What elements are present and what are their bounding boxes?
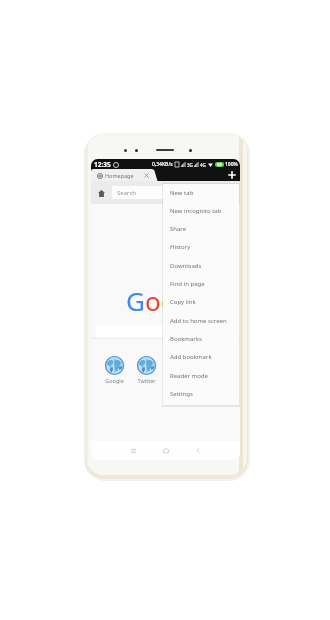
- button[interactable]: Twitter: [131, 356, 161, 384]
- button[interactable]: New incognito tab: [163, 202, 239, 220]
- staticText: Downloads: [170, 262, 202, 270]
- staticText: Twitter: [137, 377, 156, 384]
- staticText: Find in page: [170, 280, 205, 288]
- staticText: l: [193, 283, 200, 318]
- staticText: 0,34KB/s: [152, 161, 173, 168]
- staticText: e: [200, 283, 215, 318]
- staticText: o: [161, 283, 177, 318]
- button[interactable]: Find in page: [163, 275, 239, 293]
- button[interactable]: Home: [96, 188, 106, 198]
- button[interactable]: Search: [112, 186, 230, 199]
- button[interactable]: Back: [191, 444, 204, 457]
- button[interactable]: New tab: [227, 170, 237, 180]
- staticText: Add bookmark: [170, 353, 212, 361]
- staticText: Copy link: [170, 298, 196, 306]
- button[interactable]: Home: [159, 444, 172, 457]
- staticText: Google: [105, 377, 124, 384]
- staticText: g: [177, 283, 193, 318]
- button[interactable]: Downloads: [163, 257, 239, 275]
- staticText: Share: [170, 225, 187, 233]
- button[interactable]: History: [163, 238, 239, 256]
- staticText: New incognito tab: [170, 207, 222, 215]
- staticText: o: [145, 283, 161, 318]
- button[interactable]: Add bookmark: [163, 348, 239, 366]
- button[interactable]: Copy link: [163, 293, 239, 311]
- button[interactable]: New tab: [163, 184, 239, 202]
- staticText: Add to home screen: [170, 317, 227, 325]
- button[interactable]: Google: [99, 356, 129, 384]
- staticText: Bookmarks: [170, 335, 202, 343]
- button[interactable]: Homepage: [91, 169, 240, 181]
- staticText: G: [126, 283, 145, 318]
- button[interactable]: Share: [163, 220, 239, 238]
- button[interactable]: Recent apps: [127, 444, 140, 457]
- staticText: 4G: [200, 162, 206, 168]
- button[interactable]: Add to home screen: [163, 312, 239, 330]
- staticText: 100%: [225, 161, 238, 168]
- button[interactable]: Bookmarks: [163, 330, 239, 348]
- staticText: 12:35: [94, 160, 111, 169]
- staticText: Homepage: [105, 172, 134, 179]
- staticText: Search: [117, 189, 136, 197]
- button[interactable]: Settings: [163, 385, 239, 403]
- staticText: Reader mode: [170, 372, 208, 380]
- staticText: History: [170, 243, 191, 251]
- staticText: 3G: [187, 162, 193, 168]
- staticText: Settings: [170, 390, 193, 398]
- staticText: New tab: [170, 189, 194, 197]
- button[interactable]: Reader mode: [163, 367, 239, 385]
